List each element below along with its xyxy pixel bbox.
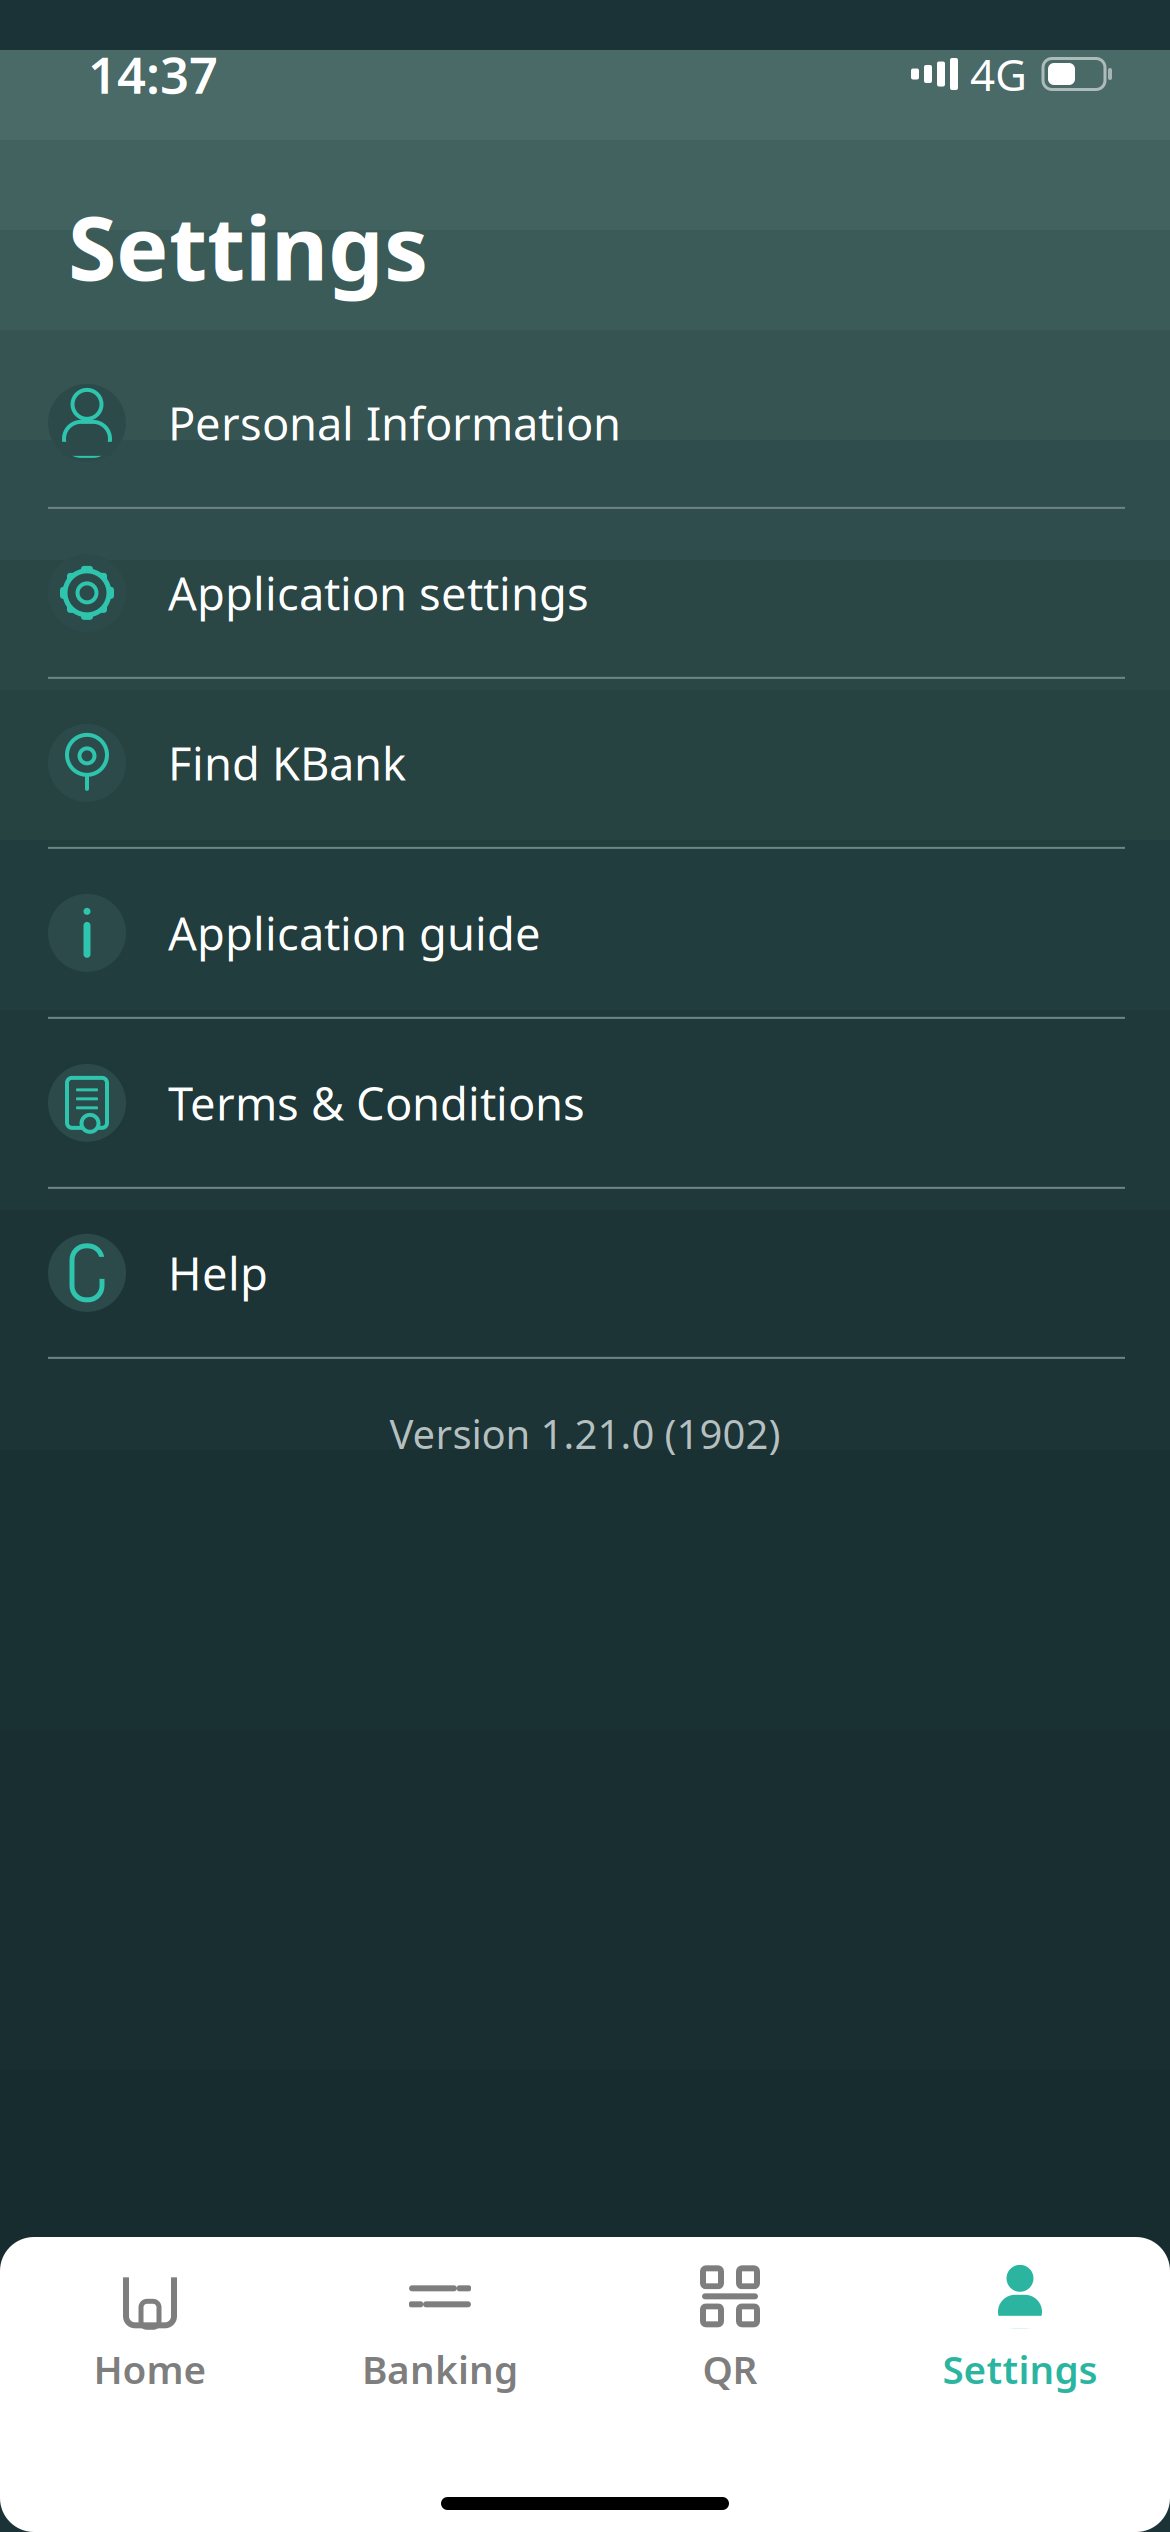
button[interactable]: Application guide <box>0 849 1170 1019</box>
button[interactable]: Find KBank <box>0 679 1170 849</box>
button[interactable]: Home <box>5 2255 295 2405</box>
staticText: QR <box>702 2343 757 2395</box>
staticText: Application settings <box>168 563 589 623</box>
staticText: Terms & Conditions <box>168 1073 585 1133</box>
staticText: Help <box>168 1243 268 1303</box>
button[interactable]: QR <box>585 2255 875 2405</box>
staticText: 4G <box>970 45 1027 103</box>
button[interactable]: Personal Information <box>0 339 1170 509</box>
staticText: Find KBank <box>168 733 406 793</box>
button[interactable]: Help <box>0 1189 1170 1359</box>
button[interactable]: Banking <box>295 2255 585 2405</box>
staticText: Version 1.21.0 (1902) <box>389 1407 780 1460</box>
button[interactable]: Settings <box>875 2255 1165 2405</box>
staticText: 14:37 <box>88 40 218 108</box>
staticText: Settings <box>68 188 428 305</box>
button[interactable]: Application settings <box>0 509 1170 679</box>
button[interactable]: Terms & Conditions <box>0 1019 1170 1189</box>
staticText: Personal Information <box>168 393 621 453</box>
staticText: Banking <box>362 2343 518 2395</box>
staticText: Settings <box>942 2343 1097 2395</box>
staticText: Application guide <box>168 903 541 963</box>
staticText: Home <box>93 2343 206 2395</box>
